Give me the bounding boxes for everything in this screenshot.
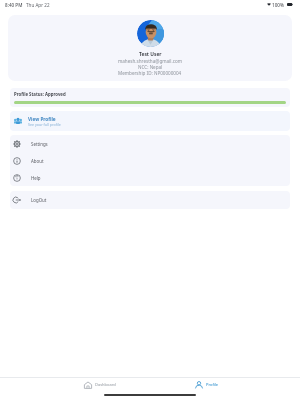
button[interactable]: Profile: [195, 377, 219, 392]
button[interactable]: View Profile: [10, 111, 290, 131]
button[interactable]: About: [10, 152, 290, 169]
staticText: mahesh.shrestha@gmail.com: [118, 58, 182, 64]
staticText: Profile: [206, 382, 219, 387]
staticText: About: [31, 158, 44, 164]
staticText: Test User: [139, 51, 162, 58]
staticText: 8:40 PM: [5, 2, 23, 8]
staticText: Help: [31, 175, 41, 181]
button[interactable]: LogOut: [10, 191, 290, 209]
button[interactable]: Help: [10, 169, 290, 186]
staticText: Settings: [31, 141, 48, 147]
staticText: Dashboard: [95, 382, 116, 387]
button[interactable]: Settings: [10, 135, 290, 152]
staticText: See your full profile: [28, 122, 61, 127]
staticText: View Profile: [28, 116, 56, 122]
staticText: LogOut: [31, 197, 47, 203]
staticText: Membership ID: NP00000004: [118, 70, 182, 76]
staticText: NCC: Nepal: [138, 64, 163, 70]
staticText: 100%: [272, 2, 284, 8]
staticText: Thu Apr 22: [26, 2, 50, 8]
staticText: Profile Status: Approved: [14, 91, 66, 97]
button[interactable]: Dashboard: [84, 377, 116, 392]
